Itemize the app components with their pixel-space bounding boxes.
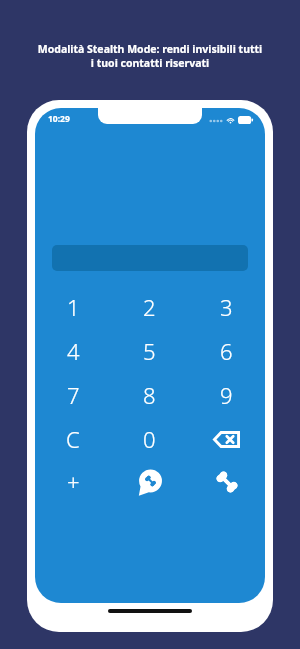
- staticText: 5: [143, 336, 156, 366]
- button[interactable]: Call: [188, 462, 265, 502]
- staticText: 4: [67, 336, 80, 366]
- button[interactable]: WhatsApp call: [111, 462, 188, 502]
- button[interactable]: +: [35, 462, 111, 502]
- button[interactable]: 2: [111, 287, 188, 327]
- staticText: 8: [143, 380, 156, 410]
- staticText: C: [66, 424, 80, 454]
- button[interactable]: 0: [111, 419, 188, 459]
- button[interactable]: 8: [111, 375, 188, 415]
- button[interactable]: 9: [188, 375, 265, 415]
- staticText: +: [67, 467, 80, 497]
- button[interactable]: 5: [111, 331, 188, 371]
- button[interactable]: 3: [188, 287, 265, 327]
- staticText: Modalità Stealth Mode: rendi invisibili …: [0, 42, 300, 70]
- staticText: 9: [220, 380, 233, 410]
- button[interactable]: 6: [188, 331, 265, 371]
- staticText: 7: [67, 380, 80, 410]
- staticText: 2: [143, 292, 156, 322]
- button[interactable]: 1: [35, 287, 111, 327]
- staticText: 6: [220, 336, 233, 366]
- button[interactable]: 7: [35, 375, 111, 415]
- staticText: 10:29: [48, 113, 70, 125]
- staticText: 3: [220, 292, 233, 322]
- button[interactable]: C: [35, 419, 111, 459]
- staticText: 1: [67, 292, 80, 322]
- staticText: 0: [143, 424, 156, 454]
- button[interactable]: Backspace: [188, 419, 265, 459]
- button[interactable]: 4: [35, 331, 111, 371]
